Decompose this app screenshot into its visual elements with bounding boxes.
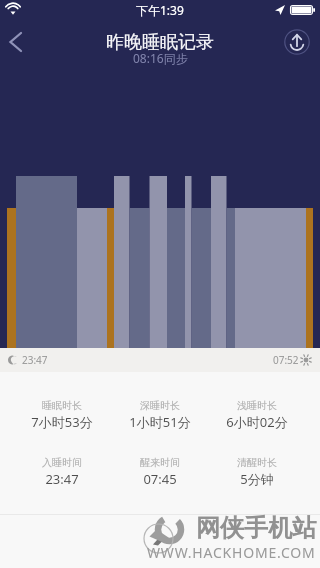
staticText: 23:47 [22, 353, 48, 367]
staticText: 昨晚睡眠记录 [106, 31, 214, 54]
staticText: 深睡时长 [140, 399, 180, 412]
button[interactable]: Back [2, 29, 28, 55]
staticText: WWW.HACKHOME.COM [147, 543, 316, 562]
button[interactable]: Sync [283, 28, 310, 55]
staticText: 醒来时间 [140, 456, 180, 469]
button[interactable]: 清醒时长 [208, 456, 305, 488]
staticText: 5分钟 [240, 470, 274, 488]
button[interactable]: 深睡时长 [111, 399, 208, 431]
staticText: 6小时02分 [226, 413, 288, 431]
button[interactable]: 入睡时间 [13, 456, 111, 488]
staticText: 7小时53分 [31, 413, 93, 431]
button[interactable]: 浅睡时长 [208, 399, 305, 431]
staticText: 08:16同步 [133, 50, 188, 66]
staticText: 1小时51分 [129, 413, 191, 431]
staticText: 07:45 [143, 470, 177, 488]
staticText: 网侠手机站 [196, 513, 316, 543]
staticText: 入睡时间 [42, 456, 82, 469]
staticText: 睡眠时长 [42, 399, 82, 412]
button[interactable]: 醒来时间 [111, 456, 208, 488]
staticText: 下午1:39 [136, 2, 184, 18]
staticText: 清醒时长 [237, 456, 277, 469]
button[interactable]: 睡眠时长 [13, 399, 111, 431]
staticText: 07:52 [273, 353, 299, 367]
staticText: 浅睡时长 [237, 399, 277, 412]
staticText: 23:47 [45, 470, 79, 488]
